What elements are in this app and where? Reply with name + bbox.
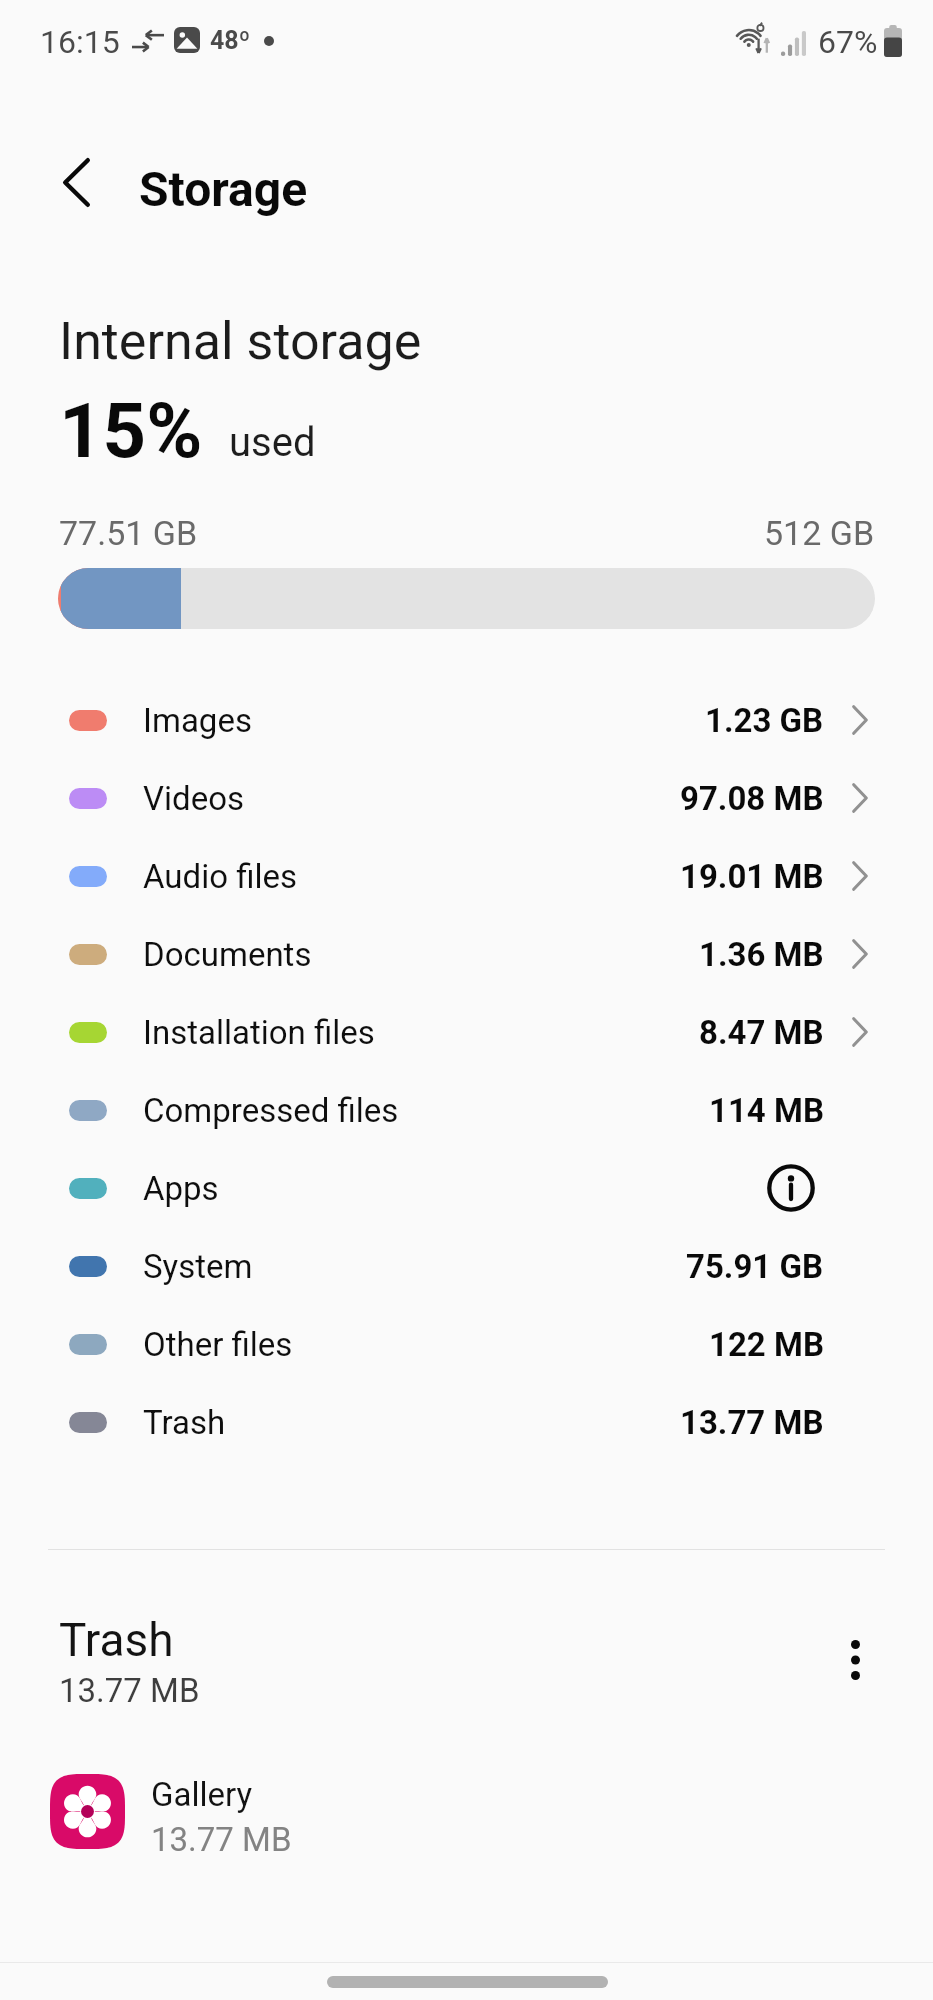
- staticText: Internal storage: [59, 311, 422, 372]
- staticText: 8.47 MB: [699, 1013, 824, 1052]
- button[interactable]: Trash: [0, 1383, 933, 1461]
- staticText: 16:15: [40, 23, 120, 61]
- staticText: 19.01 MB: [680, 857, 824, 896]
- staticText: 13.77 MB: [59, 1671, 200, 1710]
- staticText: Images: [143, 701, 252, 740]
- staticText: 48º: [210, 26, 251, 55]
- staticText: Documents: [143, 935, 312, 974]
- staticText: Trash: [143, 1403, 226, 1442]
- button[interactable]: Documents: [0, 915, 933, 993]
- staticText: 1.36 MB: [699, 935, 824, 974]
- staticText: 15%: [59, 386, 203, 475]
- button[interactable]: System: [0, 1227, 933, 1305]
- staticText: Gallery: [151, 1775, 253, 1814]
- button[interactable]: Back: [38, 144, 114, 220]
- staticText: 122 MB: [709, 1325, 824, 1364]
- staticText: 77.51 GB: [59, 513, 198, 553]
- staticText: Storage: [139, 161, 308, 217]
- staticText: 1.23 GB: [705, 701, 824, 740]
- staticText: System: [143, 1247, 253, 1286]
- staticText: 97.08 MB: [680, 779, 824, 818]
- staticText: 67%: [818, 23, 878, 61]
- button[interactable]: Audio files: [0, 837, 933, 915]
- staticText: Trash: [59, 1613, 174, 1667]
- staticText: 75.91 GB: [686, 1247, 824, 1286]
- button[interactable]: Other files: [0, 1305, 933, 1383]
- staticText: Audio files: [143, 857, 298, 896]
- staticText: Other files: [143, 1325, 293, 1364]
- button[interactable]: Gallery: [0, 1752, 933, 1872]
- staticText: Installation files: [143, 1013, 375, 1052]
- staticText: 13.77 MB: [680, 1403, 824, 1442]
- button[interactable]: Trash: [0, 1600, 933, 1720]
- staticText: Videos: [143, 779, 244, 818]
- button[interactable]: About apps storage: [767, 1164, 815, 1212]
- button[interactable]: Apps: [0, 1149, 933, 1227]
- button[interactable]: Videos: [0, 759, 933, 837]
- button[interactable]: Images: [0, 681, 933, 759]
- button[interactable]: More options: [815, 1620, 895, 1700]
- staticText: 13.77 MB: [151, 1820, 292, 1859]
- staticText: 512 GB: [764, 513, 875, 553]
- button[interactable]: Compressed files: [0, 1071, 933, 1149]
- staticText: used: [229, 419, 316, 466]
- button[interactable]: Installation files: [0, 993, 933, 1071]
- staticText: 114 MB: [709, 1091, 824, 1130]
- staticText: Compressed files: [143, 1091, 399, 1130]
- staticText: Apps: [143, 1169, 219, 1208]
